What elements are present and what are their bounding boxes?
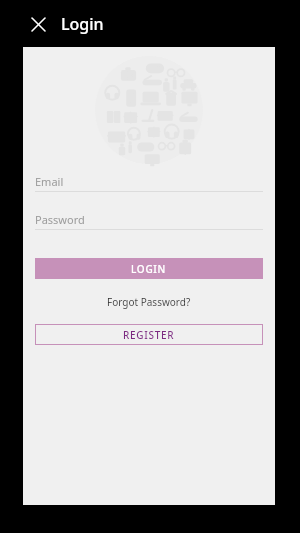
staticText: Password [35, 212, 85, 227]
staticText: LOGIN [131, 262, 167, 276]
staticText: Forgot Password? [107, 295, 191, 309]
staticText: REGISTER [123, 328, 175, 342]
button[interactable]: Password [35, 210, 263, 230]
staticText: Login [61, 13, 104, 35]
button[interactable]: LOGIN [35, 258, 263, 279]
button[interactable]: REGISTER [35, 324, 263, 345]
staticText: Email [35, 174, 64, 189]
button[interactable]: Forgot Password? [99, 293, 199, 311]
button[interactable]: Close [24, 10, 52, 38]
button[interactable]: Email [35, 172, 263, 192]
